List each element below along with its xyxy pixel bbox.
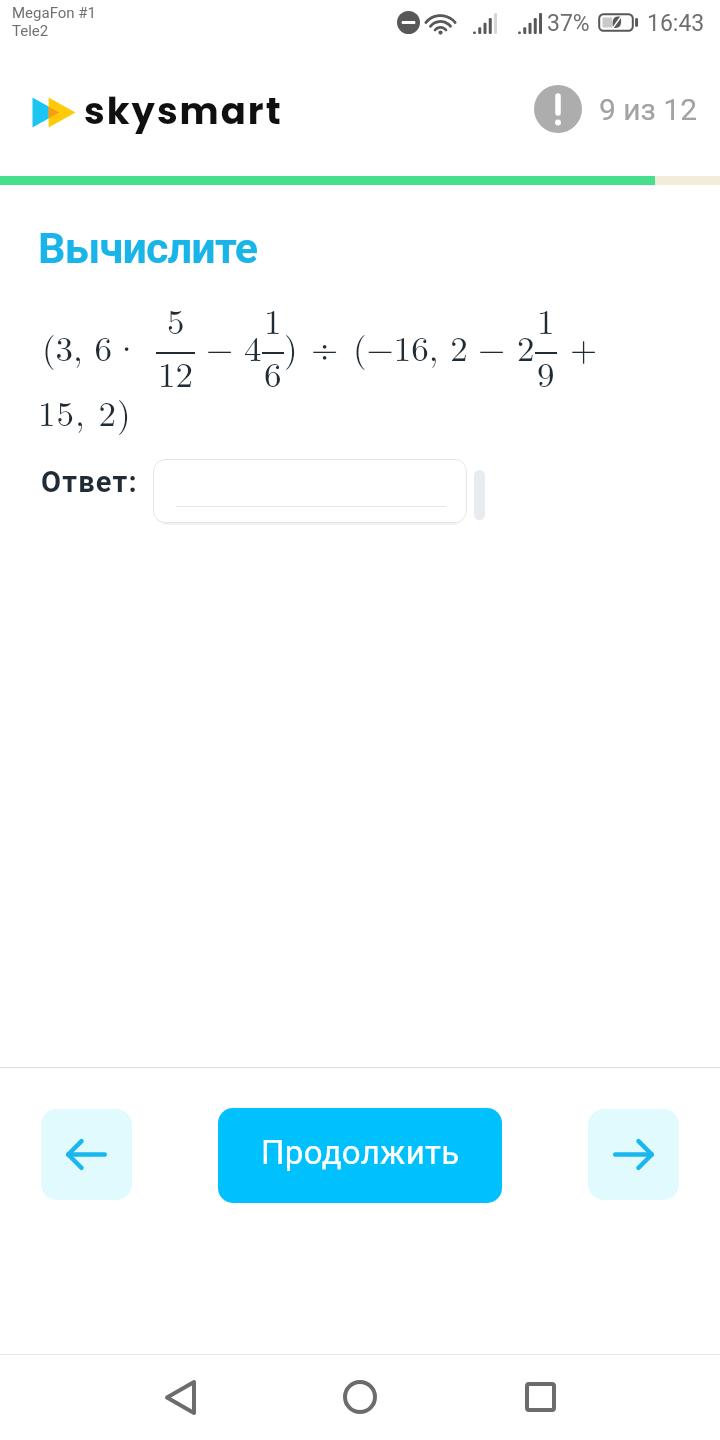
staticText: + xyxy=(570,322,598,372)
staticText: 6 xyxy=(264,348,282,398)
staticText: 15, 2) xyxy=(38,387,132,437)
button[interactable]: Back xyxy=(145,1362,215,1432)
staticText: ÷ xyxy=(311,322,339,372)
staticText: · xyxy=(113,322,141,372)
staticText: Tele2 xyxy=(12,22,49,40)
staticText: 1 xyxy=(537,295,555,345)
button[interactable]: Recents xyxy=(505,1362,575,1432)
staticText: 9 xyxy=(537,348,555,398)
staticText: 5 xyxy=(167,295,185,345)
staticText: 37% xyxy=(547,10,590,37)
button[interactable]: Home xyxy=(325,1362,395,1432)
button[interactable]: Вперёд xyxy=(588,1109,679,1200)
button[interactable]: Назад xyxy=(41,1109,132,1200)
staticText: (3, 6 xyxy=(42,322,113,372)
button[interactable]: Продолжить xyxy=(218,1108,502,1203)
staticText: skysmart xyxy=(84,85,283,137)
staticText: 1 xyxy=(264,295,282,345)
button[interactable]: Поле ответа xyxy=(153,459,467,523)
staticText: (−16, 2 xyxy=(353,322,468,372)
staticText: Ответ: xyxy=(41,465,138,499)
button[interactable]: Подсказка xyxy=(534,85,582,133)
staticText: − xyxy=(478,322,506,372)
staticText: 9 из 12 xyxy=(599,92,698,127)
staticText: 4 xyxy=(244,322,262,372)
staticText: Вычислите xyxy=(38,223,258,273)
staticText: ) xyxy=(284,322,298,372)
staticText: 16:43 xyxy=(647,10,705,37)
staticText: − xyxy=(206,322,234,372)
staticText: MegaFon #1 xyxy=(12,4,96,22)
staticText: Продолжить xyxy=(261,1133,460,1172)
staticText: 12 xyxy=(158,348,194,398)
staticText: 2 xyxy=(517,322,535,372)
